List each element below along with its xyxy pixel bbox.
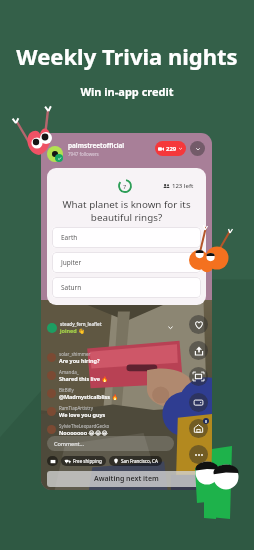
staticText: Jupiter — [61, 258, 82, 267]
button[interactable]: Collapse — [190, 141, 205, 156]
button[interactable]: Expand — [189, 367, 208, 386]
button[interactable]: Saturn — [52, 277, 201, 298]
staticText: 8 — [205, 419, 208, 424]
button[interactable]: Free shipping — [61, 456, 106, 466]
staticText: Saturn — [61, 283, 82, 292]
button[interactable]: Shop — [189, 419, 208, 438]
staticText: 123 left — [172, 182, 194, 190]
staticText: Awaiting next item — [94, 474, 159, 484]
staticText: Earth — [61, 233, 78, 242]
staticText: @Madmysticalbliss 🔥 — [59, 393, 119, 400]
staticText: SylvieTheLeopardGecko — [59, 423, 110, 429]
staticText: steady_fern_leaflet — [60, 321, 102, 327]
button[interactable]: 229 — [155, 141, 186, 156]
staticText: San Francisco, CA — [121, 458, 158, 464]
button[interactable]: Jupiter — [52, 252, 201, 273]
button[interactable]: Wallet — [189, 393, 208, 412]
button[interactable]: More — [189, 445, 208, 464]
staticText: Free shipping — [73, 458, 102, 464]
button[interactable]: San Francisco, CA — [109, 456, 162, 466]
staticText: Shared this live 🔥 — [59, 375, 109, 382]
button[interactable]: Earth — [52, 227, 201, 248]
staticText: solar_shimmer — [59, 351, 91, 357]
staticText: palmstreetofficial — [68, 141, 125, 150]
staticText: Are you hiring? — [59, 357, 100, 364]
button[interactable]: Like — [189, 315, 208, 334]
button[interactable]: Comment... — [47, 436, 174, 451]
staticText: Win in-app credit — [80, 84, 174, 99]
staticText: We love you guys — [59, 411, 106, 418]
staticText: 7 — [123, 183, 127, 190]
staticText: Amanda_ — [59, 369, 79, 375]
staticText: RamTiapArtistry — [59, 405, 93, 411]
staticText: Comment... — [54, 440, 84, 447]
staticText: joined 👋 — [60, 327, 85, 334]
staticText: BitBifly — [59, 387, 74, 393]
button[interactable]: Awaiting next item — [47, 471, 206, 487]
staticText: 229 — [166, 145, 177, 153]
staticText: Weekly Trivia nights — [16, 41, 238, 71]
staticText: Nooooooo 😂😂😂 — [59, 429, 108, 436]
button[interactable]: Share — [189, 341, 208, 360]
staticText: 7947 followers — [68, 151, 99, 157]
staticText: What planet is known for its beautiful r… — [47, 198, 206, 224]
button[interactable]: Gift — [47, 456, 58, 466]
